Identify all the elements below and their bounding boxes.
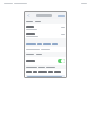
button[interactable]: Back [26, 13, 31, 18]
button[interactable] [24, 31, 67, 38]
button[interactable] [26, 75, 65, 78]
button[interactable] [24, 41, 67, 47]
button[interactable]: Toggle on [24, 57, 67, 65]
other: Toggle on [58, 59, 65, 63]
button[interactable] [24, 24, 67, 31]
button[interactable] [24, 69, 67, 74]
button[interactable]: Done [57, 13, 65, 18]
